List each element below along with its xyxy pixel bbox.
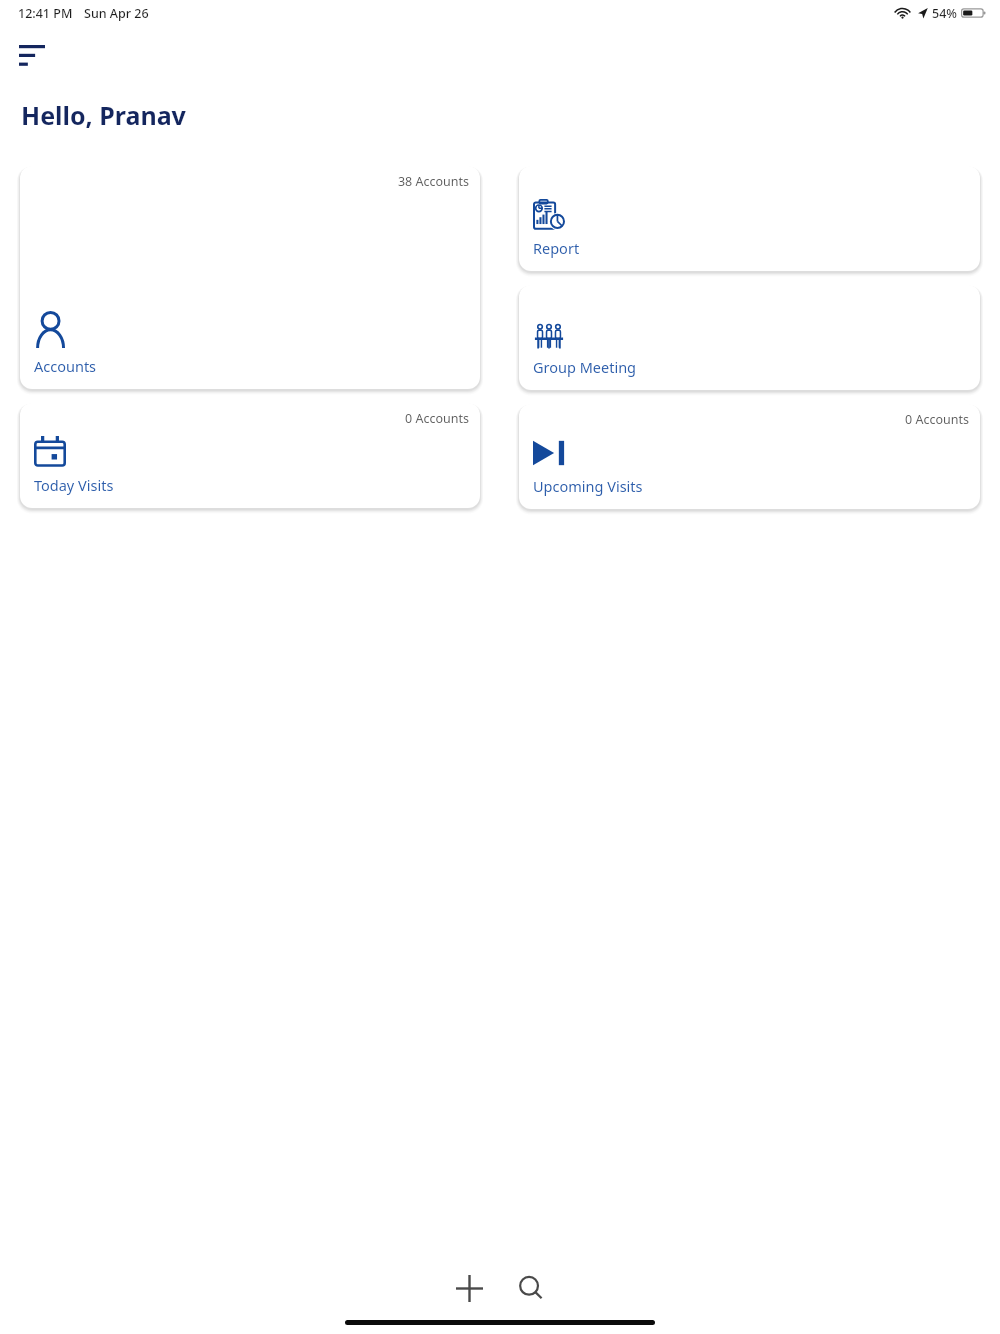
staticText: Upcoming Visits (533, 476, 643, 496)
staticText: 0 Accounts (905, 411, 969, 428)
staticText: Hello, Pranav (21, 98, 186, 132)
button[interactable]: Today Visits (20, 403, 480, 508)
button[interactable]: Report (519, 166, 980, 271)
button[interactable]: Menu (10, 32, 54, 76)
staticText: Group Meeting (533, 357, 637, 377)
staticText: 12:41 PM (18, 5, 73, 22)
staticText: 54% (932, 5, 957, 22)
staticText: Sun Apr 26 (84, 5, 149, 22)
button[interactable]: Search (505, 1262, 557, 1314)
button[interactable]: Add (443, 1262, 495, 1314)
staticText: Accounts (34, 356, 97, 376)
staticText: Today Visits (34, 475, 114, 495)
staticText: 0 Accounts (405, 410, 469, 427)
button[interactable]: Upcoming Visits (519, 404, 980, 509)
staticText: Report (533, 238, 580, 258)
button[interactable]: Group Meeting (519, 285, 980, 390)
staticText: 38 Accounts (397, 173, 469, 190)
button[interactable]: Accounts (20, 166, 480, 389)
